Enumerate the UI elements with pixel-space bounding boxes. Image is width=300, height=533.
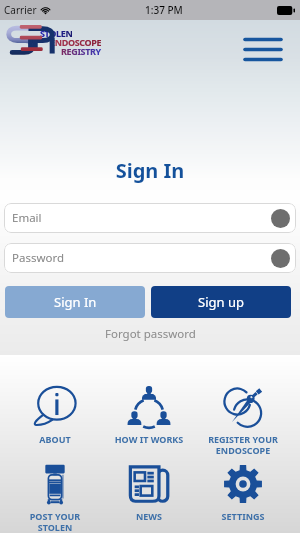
staticText: Carrier — [4, 3, 37, 17]
staticText: ABOUT — [8, 433, 102, 445]
staticText: Forgot password — [105, 326, 196, 342]
button[interactable]: Menu — [240, 30, 286, 68]
staticText: SETTINGS — [196, 510, 290, 522]
staticText: POST YOUR STOLEN — [8, 510, 102, 533]
staticText: Sign In — [54, 293, 97, 311]
staticText: HOW IT WORKS — [102, 433, 196, 445]
button[interactable]: Sign up — [151, 286, 291, 318]
staticText: ENDOSCOPE — [50, 36, 102, 48]
staticText: Sign In — [0, 157, 300, 184]
button[interactable]: POST YOUR STOLEN — [8, 456, 102, 526]
button[interactable]: Forgot password — [97, 324, 204, 344]
staticText: REGISTER YOUR ENDOSCOPE — [196, 433, 290, 456]
staticText: Email — [12, 210, 42, 226]
staticText: 1:37 PM — [145, 3, 183, 17]
button[interactable]: REGISTER YOUR ENDOSCOPE — [196, 378, 290, 448]
staticText: Password — [12, 250, 65, 266]
staticText: STOLEN — [40, 27, 73, 39]
button[interactable]: SETTINGS — [196, 456, 290, 526]
button[interactable]: Password — [4, 243, 296, 273]
button[interactable]: ABOUT — [8, 378, 102, 448]
staticText: REGISTRY — [61, 45, 101, 57]
staticText: Sign up — [198, 293, 244, 311]
button[interactable]: Email — [4, 203, 296, 233]
staticText: NEWS — [102, 510, 196, 522]
button[interactable]: NEWS — [102, 456, 196, 526]
button[interactable]: Sign In — [5, 286, 145, 318]
button[interactable]: HOW IT WORKS — [102, 378, 196, 448]
